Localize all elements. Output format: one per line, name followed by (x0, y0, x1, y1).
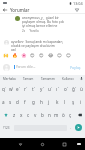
staticText: 😂 (48, 53, 54, 58)
staticText: olcakk ve paylaşım olsa bizim (11, 44, 55, 48)
button[interactable]: Emoji (28, 52, 37, 59)
staticText: . (70, 125, 71, 130)
button[interactable]: f (21, 95, 29, 108)
button[interactable]: n (46, 108, 53, 121)
staticText: i (80, 99, 82, 105)
button[interactable]: Send (73, 121, 84, 134)
staticText: 13:04 (73, 1, 83, 6)
staticText: ö (62, 112, 65, 118)
staticText: l (64, 99, 66, 105)
button[interactable]: x (18, 108, 25, 121)
button[interactable]: ?123 (0, 121, 12, 134)
staticText: k (56, 99, 59, 105)
button[interactable]: y (37, 82, 45, 95)
staticText: h (40, 99, 43, 105)
button[interactable]: g (29, 95, 37, 108)
button[interactable]: j (45, 95, 53, 108)
staticText: Tamam (23, 77, 34, 81)
staticText: 3 (19, 86, 21, 89)
button[interactable]: Merhaba (0, 75, 19, 82)
staticText: 😊 (57, 53, 62, 58)
button[interactable]: ü (77, 82, 85, 95)
button[interactable]: ö (60, 108, 67, 121)
staticText: ş (72, 99, 75, 105)
staticText: asıl (11, 48, 16, 52)
staticText: 2s Yanıtla (22, 29, 39, 33)
staticText: 9 (67, 86, 69, 89)
button[interactable]: e (14, 82, 21, 95)
button[interactable]: Tamam (19, 75, 38, 82)
button[interactable]: ş (69, 95, 77, 108)
button[interactable]: s (7, 95, 14, 108)
button[interactable]: Emoji (10, 52, 19, 59)
staticText: 0 (75, 86, 77, 89)
staticText: 4 (26, 86, 28, 89)
button[interactable]: Voice input (78, 75, 85, 82)
button[interactable]: ğ (69, 82, 77, 95)
button[interactable]: w (7, 82, 14, 95)
staticText: paylaşım olmuş. Bu foto çok (22, 20, 65, 24)
staticText: j (48, 99, 50, 105)
button[interactable]: Emoji (55, 52, 64, 59)
staticText: a (2, 99, 5, 105)
staticText: Merhaba (3, 77, 16, 81)
button[interactable]: q (0, 82, 7, 95)
button[interactable]: Shift (0, 108, 11, 121)
button[interactable]: Kullanıcı (58, 75, 78, 82)
staticText: 🔥 (12, 53, 18, 58)
staticText: Kullanıcı (62, 77, 74, 81)
button[interactable]: a (0, 95, 7, 108)
staticText: s (9, 99, 12, 105)
button[interactable]: t (29, 82, 37, 95)
button[interactable]: k (53, 95, 61, 108)
staticText: ayselbnr Sonuçlandı mı kapandan, (11, 40, 64, 44)
button[interactable]: ç (67, 108, 74, 121)
staticText: Yorum ekle... (16, 65, 36, 69)
button[interactable]: Emoji (46, 52, 55, 59)
button[interactable]: o (61, 82, 69, 95)
staticText: e (16, 86, 19, 92)
button[interactable]: r (21, 82, 29, 95)
button[interactable]: Hide keyboard (74, 139, 84, 149)
button[interactable]: Emoji (19, 52, 28, 59)
staticText: Yorumlar (10, 7, 30, 13)
staticText: w (9, 86, 13, 92)
button[interactable]: Recents (59, 139, 69, 149)
staticText: 8 (58, 86, 60, 89)
button[interactable]: Back (0, 6, 9, 13)
staticText: 🙌 (3, 53, 9, 58)
button[interactable]: l (61, 95, 69, 108)
staticText: y (40, 86, 43, 92)
staticText: 😍 (39, 53, 44, 58)
button[interactable]: z (11, 108, 18, 121)
button[interactable]: Back (15, 139, 25, 149)
staticText: 6 (43, 86, 45, 89)
staticText: b (41, 112, 44, 118)
button[interactable]: d (14, 95, 21, 108)
button[interactable]: ı (53, 82, 61, 95)
button[interactable]: h (37, 95, 45, 108)
button[interactable]: u (45, 82, 53, 95)
staticText: 😊 (66, 53, 71, 58)
button[interactable]: c (25, 108, 32, 121)
staticText: ç (69, 112, 72, 118)
button[interactable]: Tamamen (38, 75, 58, 82)
button[interactable]: Emoji (1, 52, 10, 59)
staticText: 7 (51, 86, 53, 89)
staticText: Paylaş (70, 65, 81, 70)
button[interactable]: Share (71, 6, 83, 13)
button[interactable]: Home (37, 139, 47, 149)
button[interactable]: m (53, 108, 60, 121)
staticText: 😍 (30, 53, 35, 58)
button[interactable]: i (77, 95, 85, 108)
button[interactable]: b (39, 108, 46, 121)
button[interactable]: Backspace (74, 108, 85, 121)
button[interactable]: Emoji (64, 52, 73, 59)
button[interactable]: Emoji (37, 52, 46, 59)
staticText: r (24, 86, 26, 92)
button[interactable]: v (32, 108, 39, 121)
button[interactable]: Paylaş (68, 64, 83, 71)
